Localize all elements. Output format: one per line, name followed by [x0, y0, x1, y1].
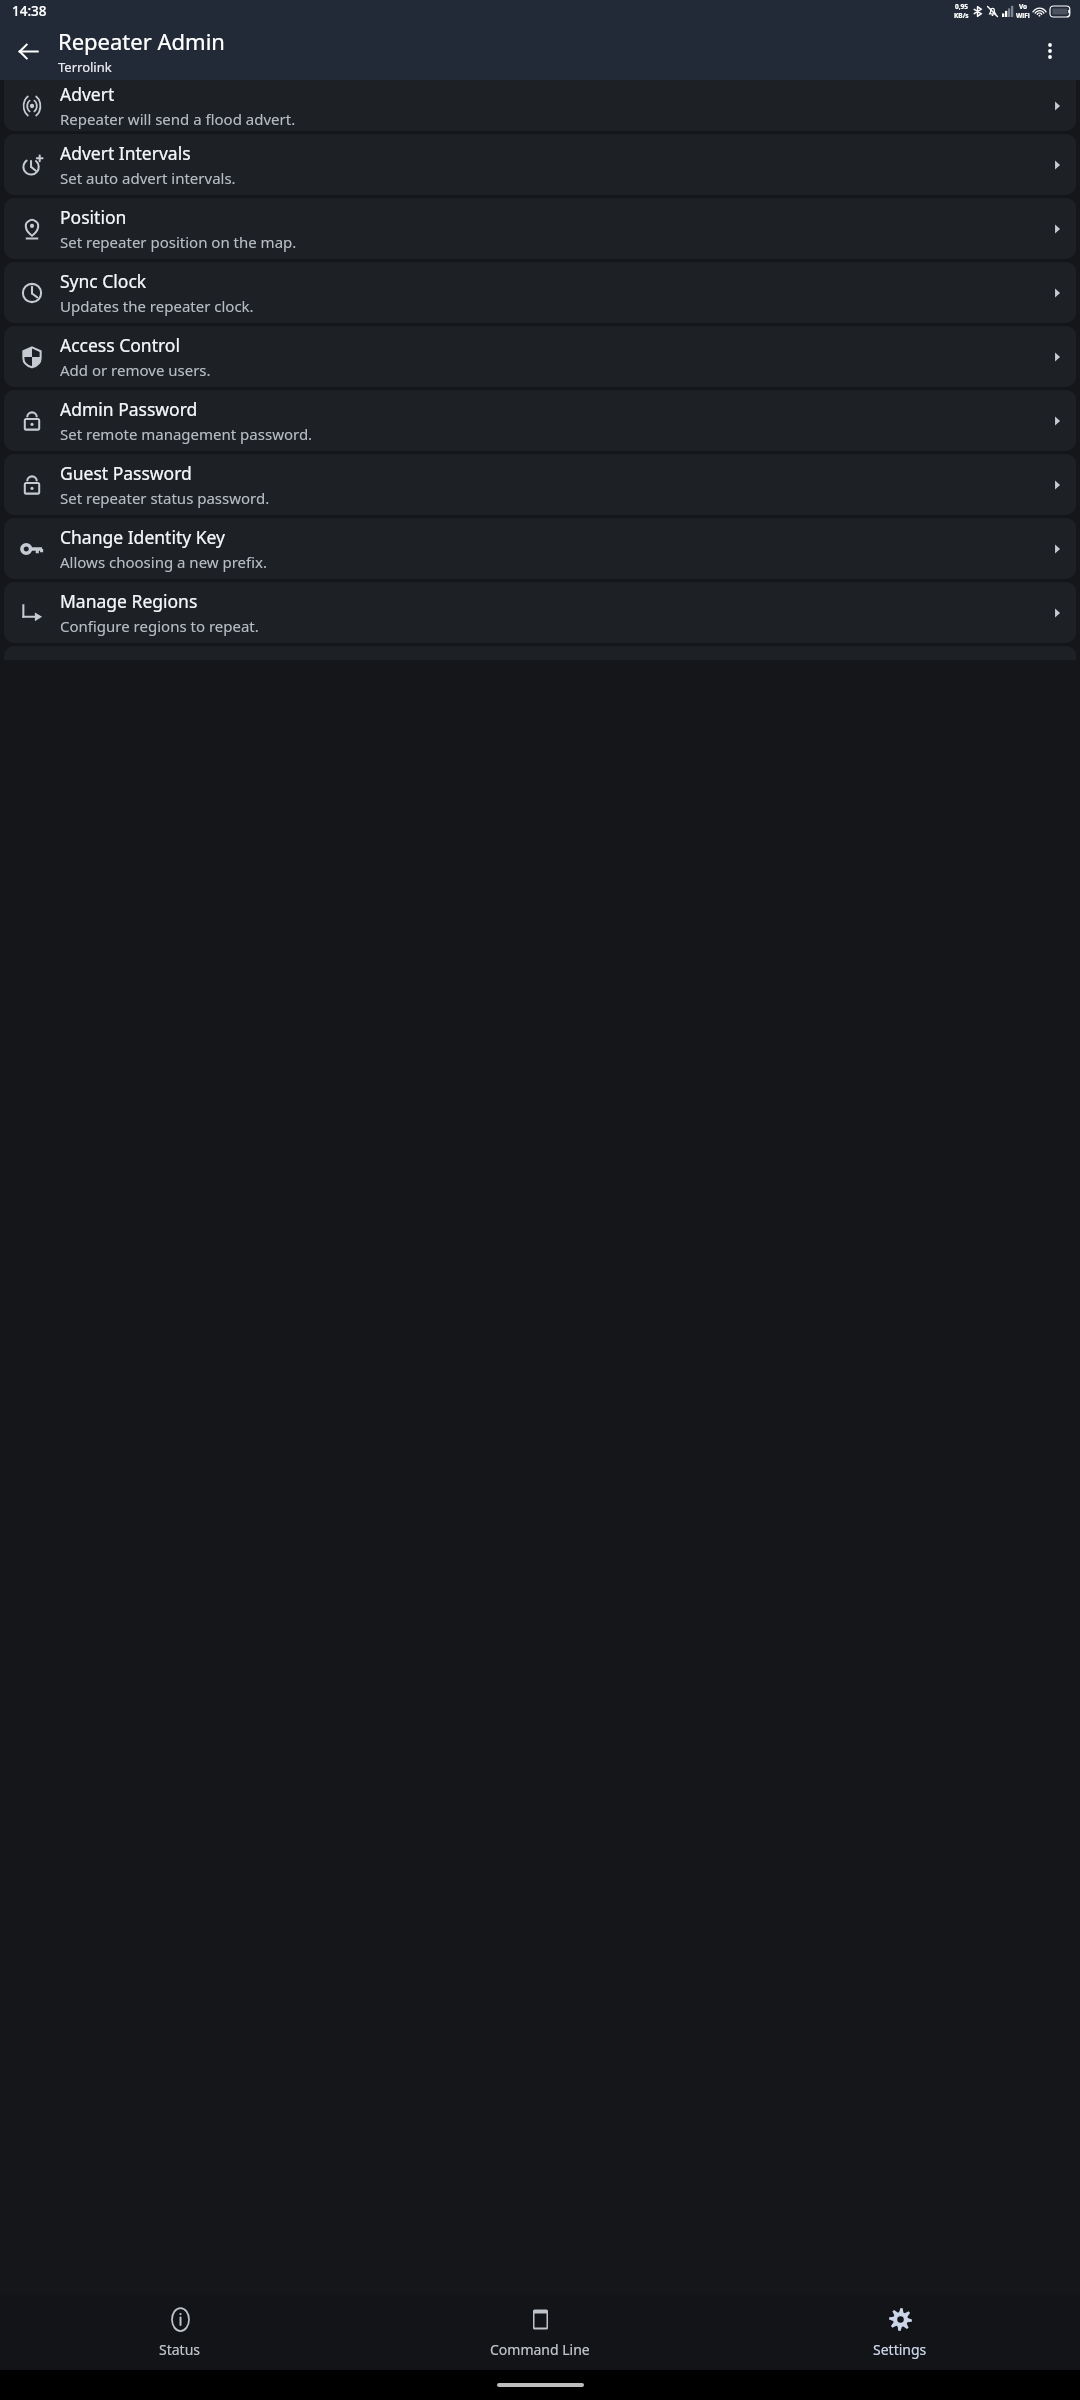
staticText: 0,95 — [955, 2, 969, 11]
staticText: Allows choosing a new prefix. — [60, 552, 268, 572]
button[interactable]: Manage Regions — [4, 582, 1076, 643]
staticText: Command Line — [490, 2340, 590, 2359]
button[interactable]: Back — [4, 27, 52, 75]
button[interactable]: More options — [1026, 27, 1074, 75]
staticText: Repeater Admin — [58, 26, 225, 56]
staticText: 14:38 — [12, 2, 47, 20]
button[interactable]: Sync Clock — [4, 262, 1076, 323]
button[interactable]: Status — [0, 2295, 360, 2370]
staticText: WiFi — [1016, 11, 1030, 20]
staticText: Status — [159, 2340, 201, 2359]
staticText: Guest Password — [60, 461, 192, 485]
staticText: Configure regions to repeat. — [60, 616, 259, 636]
staticText: Admin Password — [60, 397, 198, 421]
staticText: Advert Intervals — [60, 141, 191, 165]
staticText: Change Identity Key — [60, 525, 225, 549]
button[interactable]: Guest Password — [4, 454, 1076, 515]
staticText: Settings — [873, 2340, 927, 2359]
button[interactable]: Advert Intervals — [4, 134, 1076, 195]
button[interactable]: Advert — [4, 80, 1076, 131]
button[interactable]: Settings — [720, 2295, 1080, 2370]
button[interactable]: Admin Password — [4, 390, 1076, 451]
staticText: Access Control — [60, 333, 180, 357]
staticText: Updates the repeater clock. — [60, 296, 254, 316]
staticText: Terrolink — [58, 58, 112, 76]
staticText: Repeater will send a flood advert. — [60, 109, 296, 129]
staticText: Set repeater position on the map. — [60, 232, 297, 252]
staticText: Sync Clock — [60, 269, 147, 293]
button[interactable]: Access Control — [4, 326, 1076, 387]
staticText: Set remote management password. — [60, 424, 313, 444]
staticText: Position — [60, 205, 127, 229]
staticText: Set auto advert intervals. — [60, 168, 236, 188]
button[interactable]: Position — [4, 198, 1076, 259]
staticText: Vo — [1019, 2, 1028, 11]
button[interactable]: Change Identity Key — [4, 518, 1076, 579]
staticText: Add or remove users. — [60, 360, 211, 380]
staticText: Manage Regions — [60, 589, 198, 613]
staticText: Advert — [60, 82, 115, 106]
staticText: KB/s — [954, 11, 969, 20]
staticText: Set repeater status password. — [60, 488, 270, 508]
button[interactable]: Command Line — [360, 2295, 720, 2370]
